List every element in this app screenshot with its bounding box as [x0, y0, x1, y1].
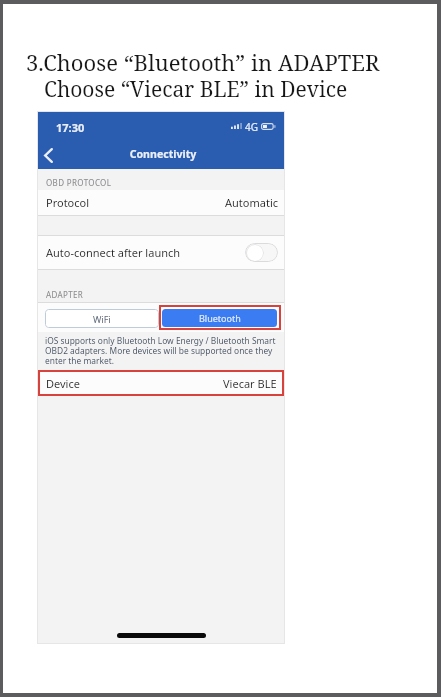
button[interactable]: Device: [39, 370, 283, 396]
button[interactable]: Auto-connect after launch: [38, 236, 284, 269]
button[interactable]: WiFi: [45, 309, 159, 328]
staticText: Viecar BLE: [223, 376, 277, 391]
staticText: Auto-connect after launch: [46, 245, 181, 260]
button[interactable]: Bluetooth: [159, 305, 281, 330]
button[interactable]: Auto-connect toggle: [245, 243, 278, 262]
staticText: ADAPTER: [46, 289, 84, 300]
staticText: Choose “Viecar BLE” in Device: [44, 75, 348, 104]
staticText: 4G: [245, 120, 258, 134]
staticText: Bluetooth: [199, 312, 241, 324]
staticText: 17:30: [56, 120, 85, 135]
staticText: Connectivity: [40, 147, 286, 161]
button[interactable]: Protocol: [38, 190, 284, 215]
staticText: Protocol: [46, 195, 90, 210]
staticText: iOS supports only Bluetooth Low Energy /…: [45, 335, 280, 366]
staticText: WiFi: [93, 313, 111, 325]
staticText: OBD PROTOCOL: [46, 177, 112, 188]
staticText: 3.Choose “Bluetooth” in ADAPTER: [26, 47, 380, 77]
staticText: Automatic: [225, 195, 278, 210]
button[interactable]: Back: [38, 141, 60, 167]
staticText: Device: [46, 376, 80, 391]
